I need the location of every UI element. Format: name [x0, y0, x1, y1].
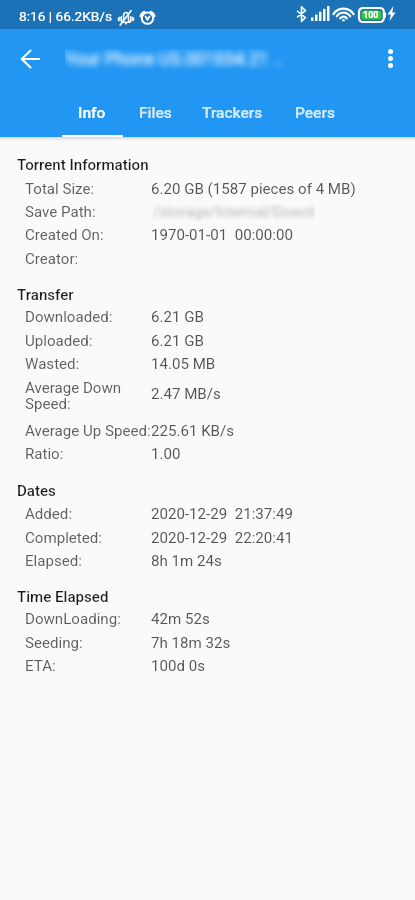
staticText: Files	[139, 104, 172, 122]
staticText: 6.21 GB	[151, 308, 204, 326]
staticText: Creator:	[25, 250, 79, 268]
staticText: Save Path:	[25, 203, 96, 221]
staticText: Transfer	[17, 286, 74, 304]
button[interactable]: Info	[61, 85, 122, 137]
staticText: Average Up Speed:	[25, 422, 151, 440]
staticText: Completed:	[25, 529, 102, 547]
staticText: 8:16 | 66.2KB/s	[19, 8, 113, 24]
staticText: Uploaded:	[25, 332, 93, 350]
staticText: 100d 0s	[151, 657, 205, 675]
button[interactable]: More options	[370, 38, 410, 78]
staticText: 2020-12-29 21:37:49	[151, 505, 293, 523]
staticText: 1970-01-01 00:00:00	[151, 226, 293, 244]
staticText: Info	[78, 104, 106, 122]
staticText: 8h 1m 24s	[151, 552, 222, 570]
staticText: 2020-12-29 22:20:41	[151, 529, 293, 547]
staticText: Total Size:	[25, 180, 95, 198]
staticText: 7h 18m 32s	[151, 634, 231, 652]
staticText: Added:	[25, 505, 73, 523]
staticText: Created On:	[25, 226, 104, 244]
button[interactable]: Navigate up	[10, 39, 50, 79]
staticText: Trackers	[202, 104, 263, 122]
staticText: Elapsed:	[25, 552, 82, 570]
staticText: Seeding:	[25, 634, 83, 652]
staticText: 100	[363, 10, 379, 21]
staticText: Dates	[17, 482, 56, 500]
button[interactable]: Trackers	[187, 85, 277, 137]
staticText: Torrent Information	[17, 156, 149, 174]
staticText: 14.05 MB	[151, 355, 216, 373]
button[interactable]: Files	[122, 85, 188, 137]
staticText: Ratio:	[25, 445, 64, 463]
staticText: 2.47 MB/s	[151, 385, 221, 403]
staticText: Peers	[295, 104, 335, 122]
staticText: 225.61 KB/s	[151, 422, 235, 440]
staticText: DownLoading:	[25, 610, 121, 628]
staticText: Time Elapsed	[17, 588, 109, 606]
staticText: Wasted:	[25, 355, 80, 373]
staticText: Downloaded:	[25, 308, 113, 326]
button[interactable]: Peers	[277, 85, 353, 137]
staticText: /storage/Internal/Downl	[153, 203, 315, 221]
staticText: 42m 52s	[151, 610, 210, 628]
staticText: 6.20 GB (1587 pieces of 4 MB)	[151, 180, 356, 198]
staticText: Your Phone US.001E04.21 ..	[65, 49, 283, 70]
staticText: Average Down Speed:	[25, 379, 122, 412]
staticText: ETA:	[25, 657, 56, 675]
staticText: 1.00	[151, 445, 181, 463]
staticText: 6.21 GB	[151, 332, 204, 350]
